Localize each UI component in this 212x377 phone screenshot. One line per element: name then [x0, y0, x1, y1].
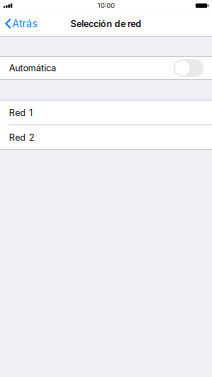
- staticText: Selección de red: [70, 18, 141, 29]
- staticText: 10:00: [97, 2, 114, 10]
- button[interactable]: Automática: [0, 57, 212, 79]
- button[interactable]: Red 1: [0, 101, 212, 125]
- staticText: Atrás: [12, 18, 37, 30]
- staticText: Red 1: [9, 107, 33, 118]
- staticText: Automática: [9, 63, 56, 74]
- button[interactable]: Atrás: [0, 11, 43, 36]
- staticText: Red 2: [9, 132, 35, 143]
- button[interactable]: Red 2: [0, 125, 212, 149]
